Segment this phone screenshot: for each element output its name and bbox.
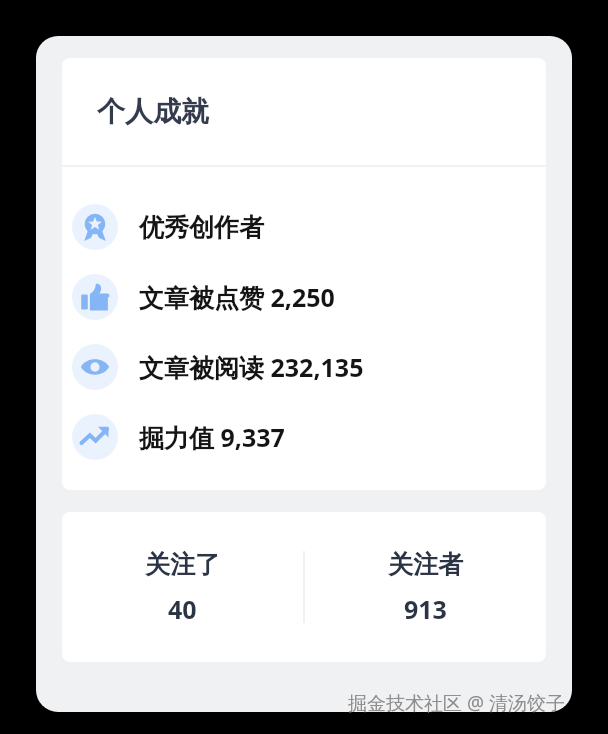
other: Power value xyxy=(72,414,118,460)
staticText: 文章被点赞 2,250 xyxy=(139,280,335,314)
staticText: 优秀创作者 xyxy=(139,212,264,243)
button[interactable]: Likes xyxy=(62,262,546,332)
button[interactable]: Power value xyxy=(62,402,546,472)
staticText: 关注者 xyxy=(388,549,463,580)
other: Excellent creator xyxy=(72,204,118,250)
button[interactable]: 关注了 xyxy=(62,512,303,662)
staticText: 文章被阅读 232,135 xyxy=(139,350,364,384)
staticText: 40 xyxy=(168,592,197,626)
button[interactable]: Views xyxy=(62,332,546,402)
other: Views xyxy=(72,344,118,390)
staticText: 913 xyxy=(404,592,447,626)
staticText: 掘力值 9,337 xyxy=(139,420,285,454)
button[interactable]: 关注者 xyxy=(305,512,546,662)
button[interactable]: Excellent creator xyxy=(62,192,546,262)
staticText: 掘金技术社区 @ 清汤饺子 xyxy=(348,690,565,716)
staticText: 关注了 xyxy=(145,549,220,580)
other: Likes xyxy=(72,274,118,320)
staticText: 个人成就 xyxy=(97,94,209,129)
